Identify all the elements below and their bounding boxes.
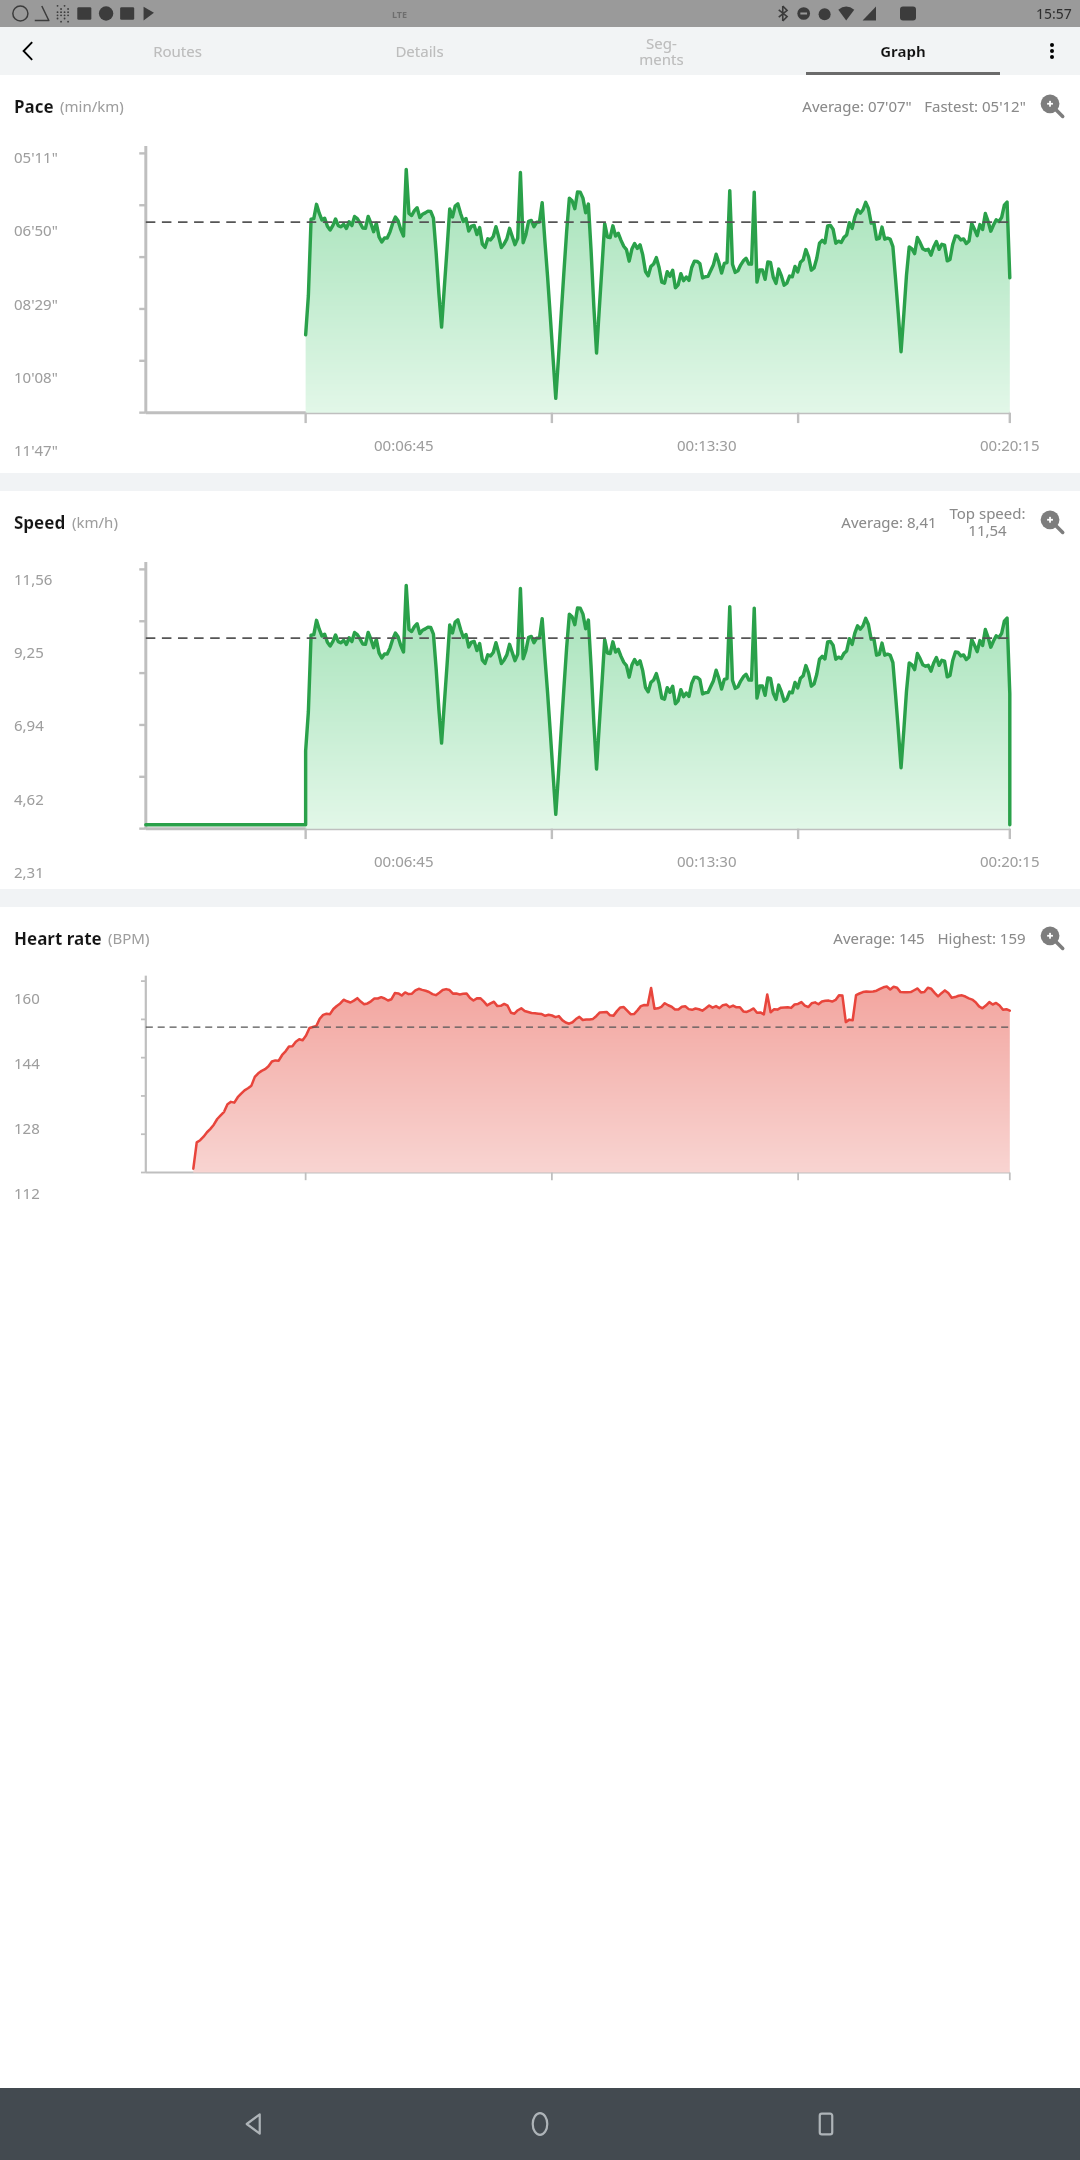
staticText: Highest: 159 [937, 928, 1026, 948]
button[interactable]: Zoom in Speed chart [1038, 508, 1066, 536]
staticText: 2,31 [14, 862, 44, 882]
staticText: Speed [14, 511, 66, 534]
staticText: 15:57 [1036, 4, 1072, 23]
staticText: 00:13:30 [677, 435, 737, 455]
staticText: 0,00 [14, 935, 44, 955]
staticText: Average: 07'07" [802, 96, 912, 116]
staticText: 11'47" [14, 440, 58, 460]
staticText: 00:20:15 [980, 851, 1040, 871]
staticText: 11,56 [14, 569, 53, 589]
button[interactable]: Zoom in Heart rate chart [1038, 924, 1066, 952]
staticText: Average: 8,41 [841, 512, 937, 532]
button[interactable]: Recent apps [794, 2092, 858, 2156]
staticText: 00:13:30 [677, 851, 737, 871]
staticText: Top speed: 11,54 [949, 503, 1026, 541]
staticText: 128 [14, 1118, 40, 1138]
staticText: 13'27" [14, 513, 58, 533]
staticText: 00:20:15 [980, 435, 1040, 455]
staticText: 00:06:45 [374, 435, 434, 455]
button[interactable]: Seg- ments [540, 27, 782, 75]
button[interactable]: Zoom in Pace chart [1038, 92, 1066, 120]
staticText: 144 [14, 1053, 40, 1073]
staticText: Seg- ments [639, 33, 684, 69]
staticText: Fastest: 05'12" [924, 96, 1026, 116]
button[interactable]: Details [298, 27, 540, 75]
button[interactable]: Routes [56, 27, 298, 75]
button[interactable]: More options [1024, 27, 1080, 75]
staticText: 160 [14, 988, 40, 1008]
staticText: Heart rate [14, 927, 102, 950]
staticText: 08'29" [14, 294, 58, 314]
staticText: 4,62 [14, 789, 44, 809]
staticText: Details [395, 41, 444, 61]
button[interactable]: Back [0, 27, 56, 75]
staticText: 00:06:45 [374, 851, 434, 871]
staticText: Routes [153, 41, 202, 61]
staticText: 06'50" [14, 220, 58, 240]
staticText: (BPM) [108, 928, 150, 948]
staticText: (min/km) [60, 96, 124, 116]
staticText: 10'08" [14, 367, 58, 387]
button[interactable]: Graph [782, 27, 1024, 75]
staticText: (km/h) [72, 512, 118, 532]
staticText: 9,25 [14, 642, 44, 662]
staticText: Pace [14, 95, 54, 118]
staticText: LTE [392, 8, 408, 20]
button[interactable]: Home [508, 2092, 572, 2156]
staticText: Average: 145 [833, 928, 925, 948]
staticText: 112 [14, 1183, 40, 1203]
staticText: 05'11" [14, 147, 58, 167]
staticText: 6,94 [14, 715, 44, 735]
staticText: Graph [880, 41, 926, 61]
button[interactable]: Back [222, 2092, 286, 2156]
